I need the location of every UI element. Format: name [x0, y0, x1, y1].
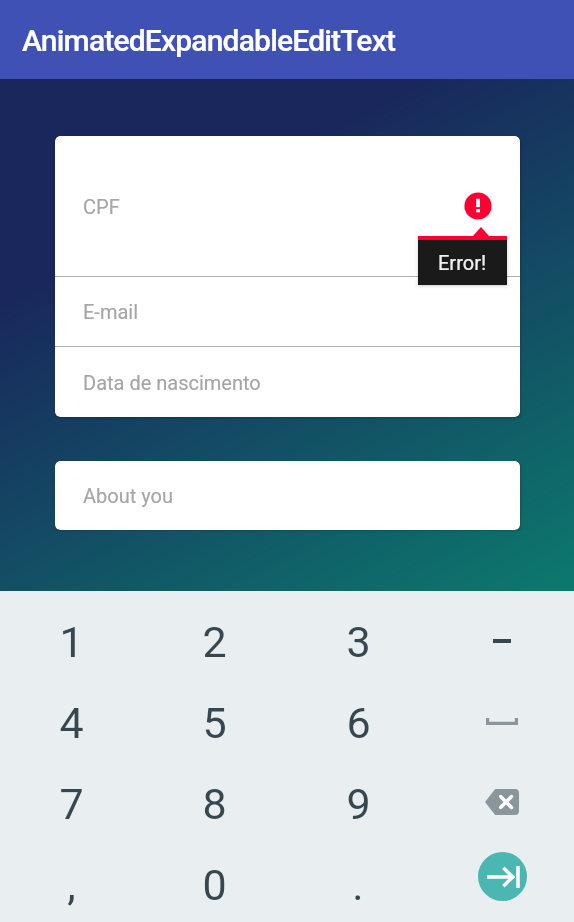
button[interactable]: E-mail	[55, 277, 520, 346]
other: Minus	[493, 636, 511, 646]
staticText: 6	[346, 698, 371, 748]
button[interactable]: .	[286, 844, 430, 922]
button[interactable]: 1	[0, 601, 143, 682]
button[interactable]: 9	[286, 763, 430, 844]
button[interactable]: 8	[143, 763, 286, 844]
button[interactable]: Backspace	[430, 763, 574, 844]
button[interactable]: 6	[286, 682, 430, 763]
button[interactable]: 2	[143, 601, 286, 682]
button[interactable]: AnimatedExpandableEditText	[0, 0, 574, 79]
staticText: 9	[346, 779, 371, 829]
staticText: .	[352, 860, 364, 910]
button[interactable]: Space	[430, 682, 574, 763]
staticText: 3	[346, 617, 371, 667]
other: Error	[464, 192, 492, 220]
button[interactable]: 0	[143, 844, 286, 922]
staticText: E-mail	[83, 300, 139, 323]
staticText: 7	[59, 779, 84, 829]
other: Backspace	[485, 789, 519, 815]
staticText: ,	[67, 860, 76, 910]
button[interactable]: Data de nascimento	[55, 347, 520, 417]
button[interactable]: CPF	[55, 136, 520, 276]
staticText: About you	[83, 484, 173, 507]
staticText: 1	[59, 617, 84, 667]
staticText: 0	[202, 860, 227, 910]
staticText: 2	[202, 617, 227, 667]
button[interactable]: 7	[0, 763, 143, 844]
button[interactable]: ,	[0, 844, 143, 922]
staticText: AnimatedExpandableEditText	[22, 23, 396, 58]
button[interactable]: Next	[478, 852, 527, 901]
button[interactable]: About you	[55, 461, 520, 530]
button[interactable]: Next	[430, 844, 574, 922]
button[interactable]: 4	[0, 682, 143, 763]
button[interactable]: Minus	[430, 601, 574, 682]
staticText: 8	[202, 779, 227, 829]
staticText: CPF	[83, 195, 120, 218]
staticText: 5	[202, 698, 227, 748]
staticText: Error!	[438, 251, 487, 274]
staticText: 4	[59, 698, 84, 748]
other: Space	[486, 718, 518, 725]
staticText: Data de nascimento	[83, 371, 261, 394]
button[interactable]: 5	[143, 682, 286, 763]
button[interactable]: 3	[286, 601, 430, 682]
